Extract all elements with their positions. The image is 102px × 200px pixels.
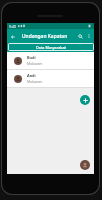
button[interactable]: More options [85,32,93,40]
button[interactable]: Back [8,32,17,41]
button[interactable]: Data Masyarakat [8,43,94,51]
button[interactable]: Andi [7,70,94,87]
staticText: Andi [27,73,36,78]
button[interactable]: Add [80,95,90,105]
staticText: Undangan Kapatan [22,33,68,40]
button[interactable]: Search [76,32,85,41]
staticText: 9:40 [9,24,17,29]
staticText: Budi [27,55,36,60]
staticText: Data Masyarakat [36,45,66,50]
staticText: Malawam [27,79,43,84]
staticText: Malawam [27,61,43,66]
button[interactable]: Profile [80,160,90,170]
button[interactable]: Budi [7,52,94,69]
